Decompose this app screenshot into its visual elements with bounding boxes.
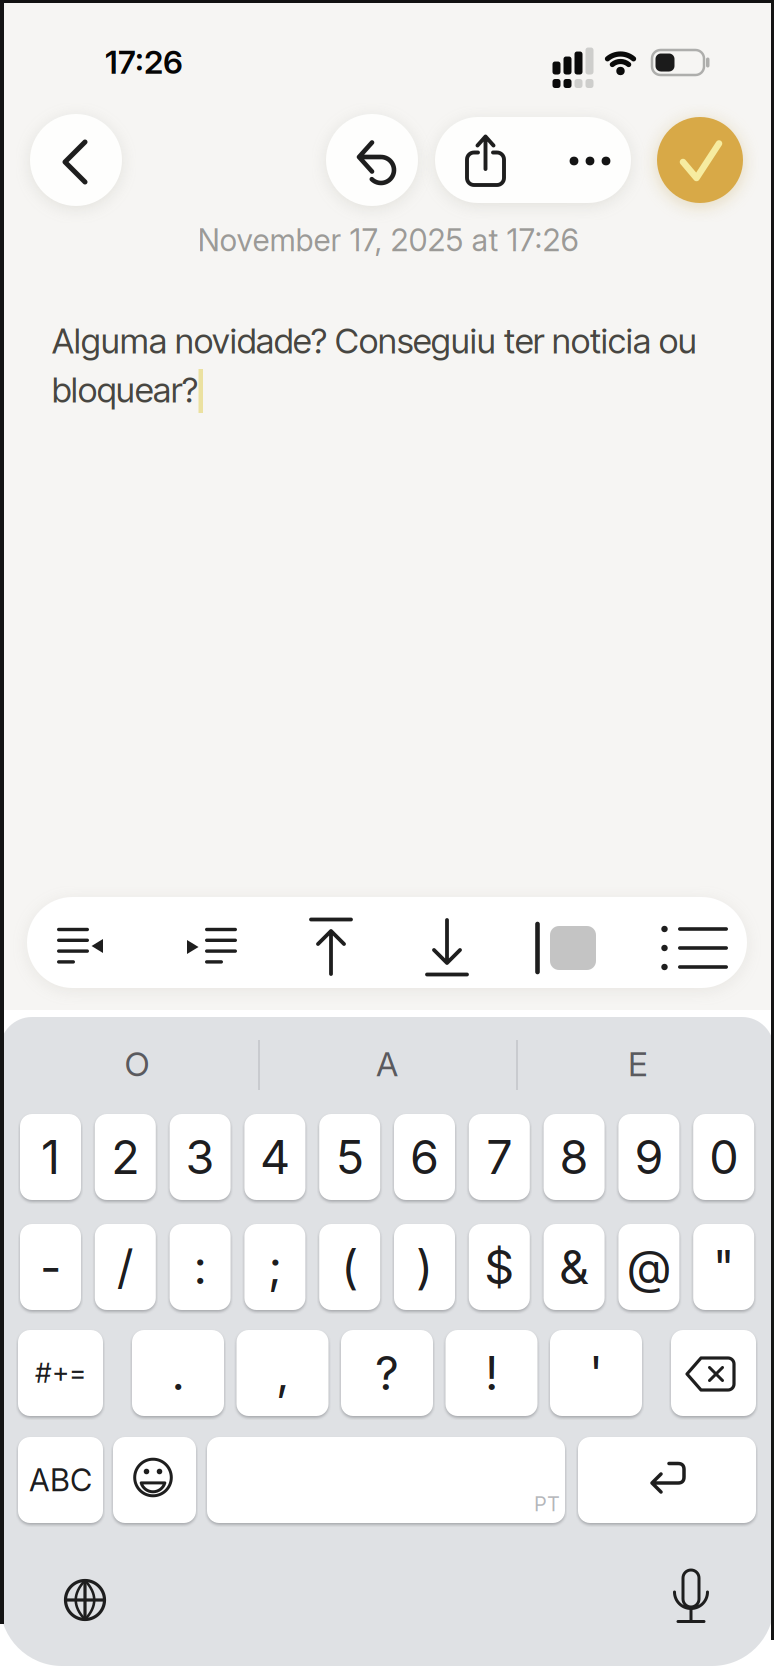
button[interactable] xyxy=(578,1437,756,1523)
button[interactable] xyxy=(150,900,250,985)
staticText: 17:26 xyxy=(105,43,183,81)
staticText: 8 xyxy=(560,1129,589,1185)
staticText: 2 xyxy=(111,1129,139,1185)
staticText: 1 xyxy=(41,1129,60,1185)
button[interactable]: ) xyxy=(394,1224,455,1310)
button[interactable] xyxy=(27,897,747,988)
staticText: ' xyxy=(589,1345,603,1401)
button[interactable]: - xyxy=(20,1224,81,1310)
staticText: ; xyxy=(268,1239,282,1295)
button[interactable]: " xyxy=(693,1224,754,1310)
button[interactable]: ( xyxy=(319,1224,380,1310)
staticText: November 17, 2025 at 17:26 xyxy=(197,221,578,258)
button[interactable]: ' xyxy=(550,1330,642,1416)
staticText: ABC xyxy=(29,1461,92,1498)
staticText: A xyxy=(376,1044,398,1084)
button[interactable] xyxy=(390,900,490,985)
staticText: . xyxy=(171,1345,184,1401)
button[interactable]: / xyxy=(95,1224,156,1310)
button[interactable] xyxy=(207,1437,565,1523)
staticText: 3 xyxy=(186,1129,215,1185)
button[interactable] xyxy=(655,1565,725,1635)
button[interactable] xyxy=(435,117,631,203)
button[interactable] xyxy=(671,1330,756,1416)
staticText: O xyxy=(124,1044,149,1084)
button[interactable]: . xyxy=(132,1330,224,1416)
button[interactable]: ABC xyxy=(18,1437,103,1523)
staticText: bloquear? xyxy=(52,369,198,411)
staticText: ( xyxy=(341,1239,358,1295)
staticText: 6 xyxy=(410,1129,439,1185)
button[interactable] xyxy=(30,114,122,206)
button[interactable]: 1 xyxy=(20,1114,81,1200)
button[interactable]: 8 xyxy=(544,1114,605,1200)
staticText: " xyxy=(713,1239,735,1295)
staticText: 9 xyxy=(634,1129,663,1185)
button[interactable] xyxy=(113,1437,196,1523)
button[interactable]: 4 xyxy=(244,1114,305,1200)
button[interactable] xyxy=(50,1565,120,1635)
staticText: ? xyxy=(375,1345,399,1401)
button[interactable] xyxy=(630,900,730,985)
staticText: Alguma novidade? Conseguiu ter noticia o… xyxy=(52,320,697,362)
button[interactable]: : xyxy=(170,1224,231,1310)
button[interactable]: , xyxy=(236,1330,328,1416)
button[interactable] xyxy=(270,900,370,985)
button[interactable]: $ xyxy=(469,1224,530,1310)
staticText: , xyxy=(276,1345,289,1401)
button[interactable]: #+= xyxy=(18,1330,103,1416)
staticText: : xyxy=(194,1239,207,1295)
staticText: ! xyxy=(485,1345,498,1401)
staticText: ) xyxy=(416,1239,433,1295)
button[interactable]: 7 xyxy=(469,1114,530,1200)
staticText: & xyxy=(559,1239,589,1295)
staticText: PT xyxy=(534,1492,560,1516)
button[interactable] xyxy=(510,900,610,985)
staticText: 5 xyxy=(336,1129,364,1185)
staticText: #+= xyxy=(35,1357,86,1389)
staticText: 4 xyxy=(260,1129,290,1185)
button[interactable]: & xyxy=(544,1224,605,1310)
staticText: E xyxy=(628,1044,648,1084)
button[interactable]: 2 xyxy=(95,1114,156,1200)
button[interactable] xyxy=(657,117,743,203)
staticText: @ xyxy=(626,1239,671,1295)
button[interactable]: E xyxy=(518,1034,758,1094)
button[interactable]: 5 xyxy=(319,1114,380,1200)
button[interactable]: 3 xyxy=(170,1114,231,1200)
button[interactable]: ; xyxy=(244,1224,305,1310)
button[interactable] xyxy=(533,117,631,203)
button[interactable]: ! xyxy=(445,1330,537,1416)
staticText: 0 xyxy=(709,1129,738,1185)
button[interactable]: ? xyxy=(341,1330,433,1416)
button[interactable]: 6 xyxy=(394,1114,455,1200)
button[interactable] xyxy=(435,117,533,203)
button[interactable] xyxy=(326,114,418,206)
button[interactable]: A xyxy=(267,1034,507,1094)
staticText: $ xyxy=(484,1239,514,1295)
button[interactable]: 0 xyxy=(693,1114,754,1200)
staticText: / xyxy=(117,1239,134,1295)
button[interactable]: 9 xyxy=(618,1114,679,1200)
button[interactable]: O xyxy=(17,1034,257,1094)
staticText: 7 xyxy=(486,1129,512,1185)
button[interactable]: @ xyxy=(618,1224,679,1310)
staticText: - xyxy=(40,1239,61,1295)
button[interactable] xyxy=(30,900,130,985)
